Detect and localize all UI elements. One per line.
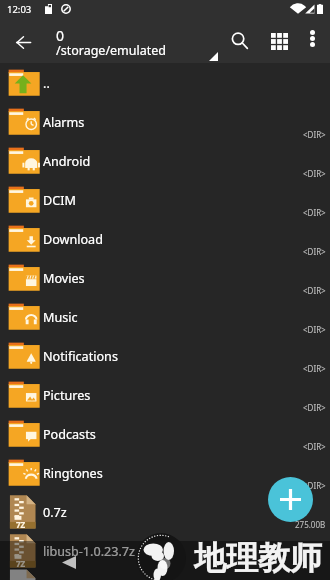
staticText: 7Z (16, 558, 26, 569)
staticText: Download (43, 231, 103, 248)
button[interactable]: Back (4, 23, 42, 61)
button[interactable]: Music (0, 297, 330, 336)
staticText: Android (43, 153, 91, 170)
staticText: 0.7z (43, 504, 67, 521)
button[interactable]: .. (0, 63, 330, 102)
staticText: 地理教师 (194, 538, 322, 578)
button[interactable]: Grid view (260, 22, 298, 60)
button[interactable]: Download (0, 219, 330, 258)
button[interactable]: Notifications (0, 336, 330, 375)
button[interactable]: 7Z (0, 531, 330, 570)
button[interactable]: DCIM (0, 180, 330, 219)
staticText: DCIM (43, 192, 76, 209)
button[interactable]: More options (296, 22, 329, 55)
button[interactable]: Android (0, 141, 330, 180)
staticText: <DIR> (303, 129, 326, 140)
staticText: Movies (43, 270, 85, 287)
button[interactable]: Search (221, 22, 259, 60)
staticText: 12:03 (7, 3, 32, 16)
staticText: /storage/emulated (56, 42, 166, 59)
button[interactable]: Alarms (0, 102, 330, 141)
button[interactable]: 7Z (0, 492, 330, 531)
staticText: 0 (56, 26, 65, 45)
staticText: <DIR> (303, 363, 326, 374)
staticText: 7Z (16, 519, 26, 530)
button[interactable]: Add (268, 477, 313, 522)
staticText: .. (43, 75, 50, 92)
staticText: Pictures (43, 387, 91, 404)
staticText: <DIR> (303, 402, 326, 413)
staticText: <DIR> (303, 441, 326, 452)
staticText: Podcasts (43, 426, 96, 443)
staticText: <DIR> (303, 285, 326, 296)
button[interactable]: Podcasts (0, 414, 330, 453)
staticText: Alarms (43, 114, 85, 131)
staticText: <DIR> (303, 168, 326, 179)
staticText: Notifications (43, 348, 118, 365)
staticText: libusb-1.0.23.7z (43, 543, 135, 560)
button[interactable] (0, 570, 330, 580)
button[interactable]: Movies (0, 258, 330, 297)
button[interactable]: Pictures (0, 375, 330, 414)
staticText: <DIR> (303, 480, 326, 491)
staticText: Ringtones (43, 465, 103, 482)
staticText: <DIR> (303, 207, 326, 218)
staticText: <DIR> (303, 324, 326, 335)
staticText: <DIR> (303, 246, 326, 257)
button[interactable]: Ringtones (0, 453, 330, 492)
staticText: Music (43, 309, 78, 326)
staticText: 275.00B (295, 519, 326, 530)
